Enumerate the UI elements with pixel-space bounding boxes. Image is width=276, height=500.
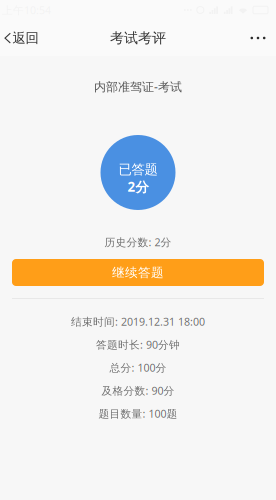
button[interactable]: More options [240,20,276,56]
staticText: 总分: 100分 [109,360,166,375]
button[interactable]: 返回 [0,20,48,56]
staticText: 结束时间: 2019.12.31 18:00 [71,314,205,329]
staticText: 2分 [127,178,148,195]
staticText: 题目数量: 100题 [98,406,177,421]
staticText: 返回 [12,30,38,46]
staticText: 内部准驾证-考试 [94,78,182,94]
staticText: 已答题 [118,161,157,178]
staticText: 及格分数: 90分 [101,383,174,398]
staticText: 答题时长: 90分钟 [96,337,180,352]
staticText: 历史分数: 2分 [104,235,171,249]
staticText: 继续答题 [112,265,164,280]
staticText: 考试考评 [110,29,166,47]
button[interactable]: 继续答题 [12,259,264,286]
